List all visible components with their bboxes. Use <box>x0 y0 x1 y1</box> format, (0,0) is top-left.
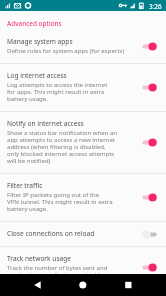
button[interactable]: Filter traffic <box>0 174 166 221</box>
staticText: Define rules for system apps (for expert… <box>7 48 125 55</box>
button[interactable]: Toggle on <box>142 84 157 91</box>
button[interactable]: Manage system apps <box>0 30 166 63</box>
button[interactable]: Toggle on <box>142 139 157 146</box>
staticText: Log attempts to access the internet for … <box>7 82 108 103</box>
staticText: Close connections on reload <box>7 230 95 238</box>
button[interactable]: Notify on internet access <box>0 112 166 173</box>
button[interactable]: Toggle on <box>142 43 157 50</box>
staticText: Show a status bar notification when an a… <box>7 130 118 165</box>
button[interactable]: Toggle on <box>142 194 157 201</box>
staticText: Notify on internet access <box>7 120 84 128</box>
button[interactable]: Toggle on <box>142 264 157 271</box>
button[interactable]: Back <box>26 274 49 296</box>
staticText: Manage system apps <box>7 38 73 46</box>
button[interactable]: Recent apps <box>117 274 140 296</box>
staticText: 3:26 <box>149 2 162 11</box>
staticText: Filter IP packets going out of the VPN t… <box>7 192 113 213</box>
button[interactable]: Log internet access <box>0 64 166 111</box>
staticText: Advanced options <box>7 19 62 28</box>
button[interactable]: Track network usage <box>0 247 166 287</box>
button[interactable]: Toggle off <box>142 231 157 238</box>
staticText: Filter traffic <box>7 182 43 190</box>
button[interactable]: Home <box>71 274 94 296</box>
staticText: Track the number of bytes sent and recei… <box>7 265 112 279</box>
button[interactable]: Close connections on reload <box>0 222 166 246</box>
staticText: Track network usage <box>7 255 72 263</box>
staticText: Log internet access <box>7 72 67 80</box>
